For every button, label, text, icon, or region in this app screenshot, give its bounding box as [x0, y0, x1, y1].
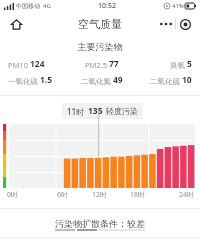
- staticText: 空气质量: [78, 17, 122, 31]
- staticText: 1.5: [40, 74, 53, 86]
- staticText: 0时: [7, 190, 19, 200]
- staticText: 124: [30, 58, 45, 70]
- staticText: 10: [182, 74, 192, 86]
- staticText: 二氧化氮: [81, 77, 111, 86]
- staticText: 12时: [92, 190, 108, 200]
- staticText: 中国移动: [16, 2, 40, 10]
- staticText: 一氧化碳: [8, 77, 38, 86]
- staticText: 41%: [172, 2, 184, 10]
- staticText: 6时: [57, 190, 69, 200]
- staticText: 臭氧: [170, 61, 185, 70]
- staticText: 77: [109, 58, 119, 70]
- staticText: PM10: [8, 60, 28, 70]
- staticText: 轻度污染: [106, 106, 138, 116]
- staticText: PM2.5: [85, 60, 107, 70]
- staticText: 4G: [43, 2, 51, 10]
- staticText: 18时: [130, 190, 146, 200]
- button[interactable]: 11时: [67, 105, 138, 117]
- staticText: 11时: [67, 106, 85, 117]
- staticText: 5: [187, 58, 192, 70]
- button[interactable]: Close: [176, 15, 194, 33]
- staticText: 24时: [179, 190, 195, 200]
- staticText: 10:52: [98, 1, 116, 11]
- staticText: 49: [113, 74, 123, 86]
- button[interactable]: Home: [6, 14, 26, 34]
- staticText: 135: [88, 105, 103, 117]
- staticText: 较差: [127, 218, 145, 229]
- button[interactable]: More: [157, 15, 175, 33]
- staticText: 污染物扩散条件：: [55, 218, 127, 229]
- staticText: 二氧化硫: [150, 77, 180, 86]
- staticText: 主要污染物: [0, 41, 200, 52]
